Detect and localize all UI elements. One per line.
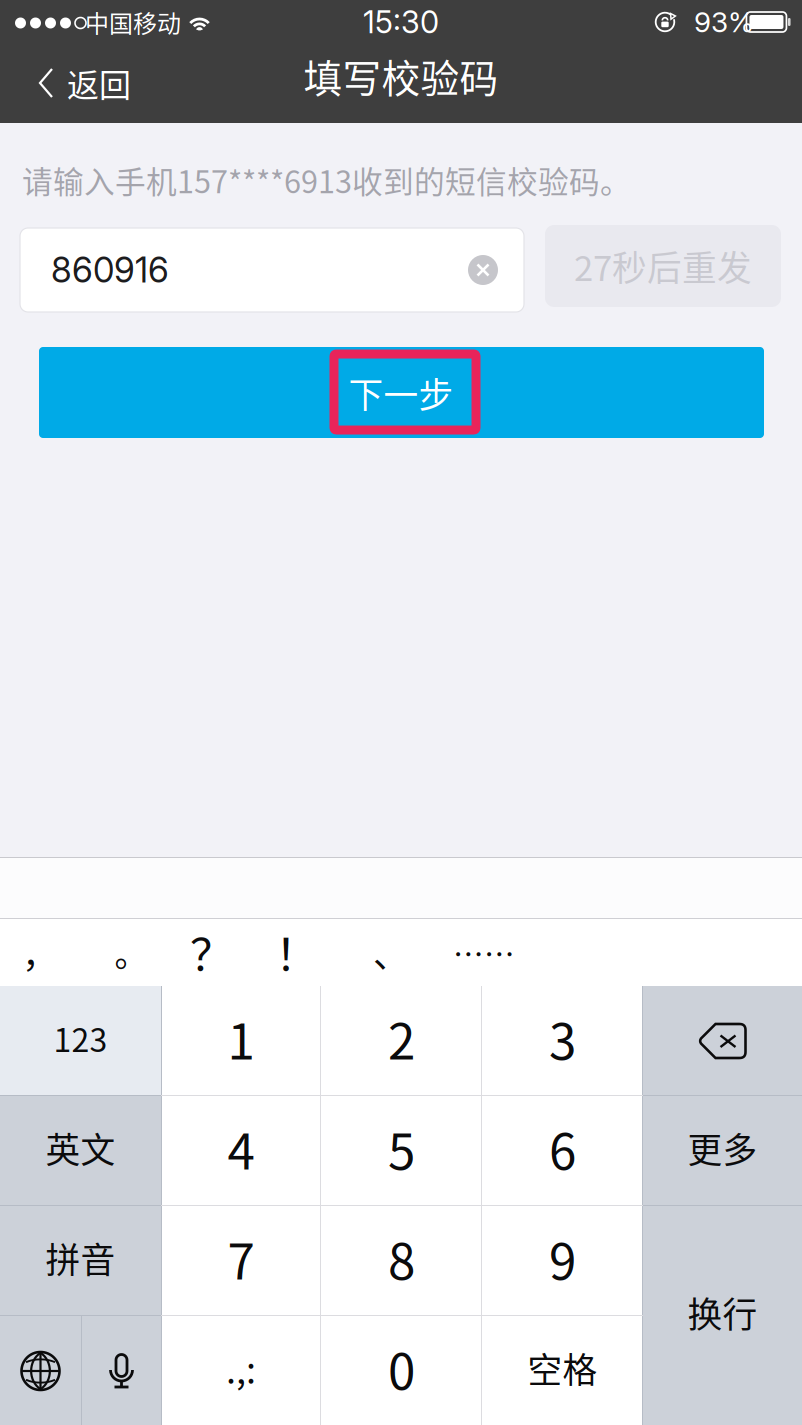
button[interactable]: 。: [88, 918, 174, 986]
button[interactable]: 空格: [482, 1316, 643, 1425]
staticText: 123: [53, 1015, 107, 1061]
button[interactable]: 3: [482, 986, 643, 1096]
button[interactable]: 英文: [0, 1096, 161, 1206]
button[interactable]: 拼音: [0, 1206, 161, 1316]
button[interactable]: 更多: [643, 1096, 802, 1206]
button[interactable]: 返回: [0, 45, 150, 123]
button[interactable]: 9: [482, 1206, 643, 1316]
staticText: 2: [388, 1002, 415, 1074]
button[interactable]: 换行: [643, 1206, 802, 1425]
staticText: 9: [549, 1222, 576, 1294]
button[interactable]: 下一步: [39, 347, 764, 438]
staticText: 更多: [687, 1123, 757, 1173]
button[interactable]: 0: [321, 1316, 482, 1425]
button[interactable]: 6: [482, 1096, 643, 1206]
staticText: 请输入手机157****6913收到的短信校验码。: [22, 158, 631, 202]
staticText: 6: [549, 1112, 576, 1184]
button[interactable]: 8: [321, 1206, 482, 1316]
staticText: 拼音: [45, 1233, 115, 1283]
button[interactable]: 860916: [20, 228, 524, 312]
staticText: 。: [114, 928, 147, 976]
staticText: 15:30: [363, 3, 439, 40]
button[interactable]: ？: [169, 918, 255, 986]
staticText: 填写校验码: [303, 48, 498, 104]
staticText: 7: [227, 1222, 254, 1294]
button[interactable]: 1: [161, 986, 321, 1096]
staticText: 4: [227, 1112, 254, 1184]
staticText: ！: [275, 920, 319, 984]
staticText: 英文: [45, 1123, 115, 1173]
staticText: 0: [388, 1332, 415, 1404]
button[interactable]: 27秒后重发: [545, 225, 781, 307]
staticText: 93%: [694, 5, 754, 39]
staticText: 8: [388, 1222, 415, 1294]
staticText: ？: [190, 920, 234, 984]
button[interactable]: 123: [0, 986, 161, 1096]
button[interactable]: ，: [0, 918, 83, 986]
staticText: 中国移动: [85, 5, 181, 39]
staticText: 下一步: [348, 368, 453, 418]
button[interactable]: .,:: [161, 1316, 321, 1425]
staticText: .,:: [226, 1342, 256, 1394]
staticText: 3: [549, 1002, 576, 1074]
button[interactable]: 2: [321, 986, 482, 1096]
button[interactable]: 5: [321, 1096, 482, 1206]
staticText: 27秒后重发: [574, 241, 752, 291]
button[interactable]: Delete: [643, 986, 802, 1096]
button[interactable]: Switch keyboard: [0, 1316, 81, 1425]
staticText: 返回: [67, 60, 131, 106]
staticText: 空格: [527, 1343, 597, 1393]
button[interactable]: ……: [441, 918, 527, 986]
staticText: 5: [388, 1112, 415, 1184]
staticText: 、: [373, 926, 409, 978]
staticText: 860916: [51, 249, 169, 291]
staticText: ……: [453, 930, 515, 974]
button[interactable]: ！: [254, 918, 340, 986]
staticText: ，: [22, 926, 58, 978]
button[interactable]: 、: [348, 918, 434, 986]
button[interactable]: 7: [161, 1206, 321, 1316]
staticText: 1: [227, 1002, 254, 1074]
button[interactable]: Dictation: [82, 1316, 161, 1425]
staticText: 换行: [687, 1287, 757, 1338]
button[interactable]: 4: [161, 1096, 321, 1206]
